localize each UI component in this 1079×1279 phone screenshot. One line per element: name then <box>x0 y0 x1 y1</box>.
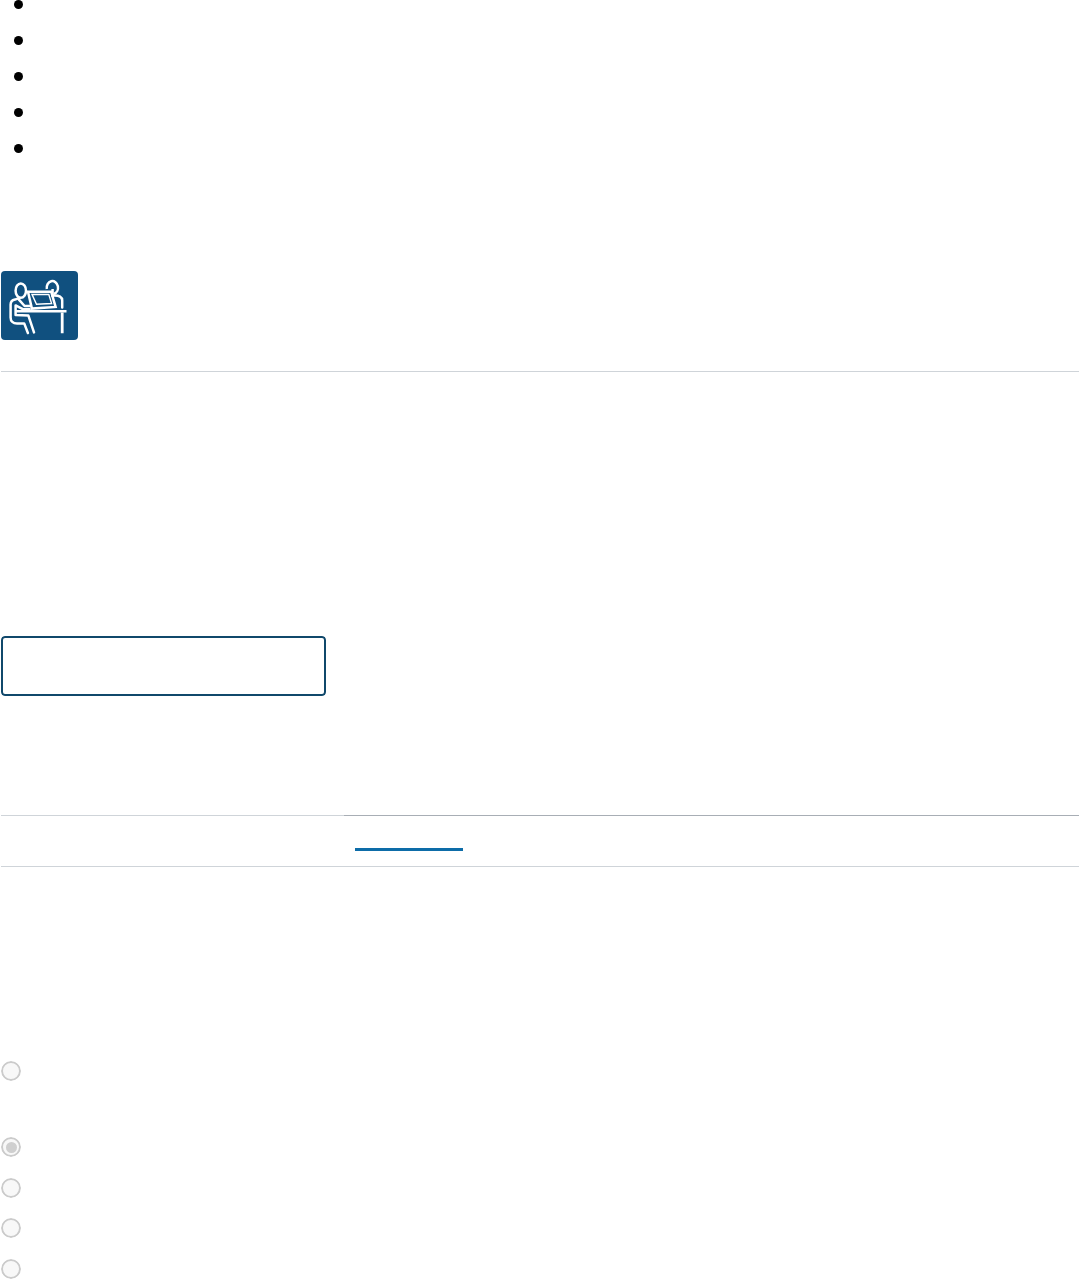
button[interactable]: Option 3 <box>1 1178 21 1198</box>
button[interactable]: Workstation assessment <box>1 271 78 340</box>
button[interactable]: Option 5 <box>1 1259 21 1279</box>
button[interactable]: Option 1 <box>1 1061 21 1081</box>
button[interactable]: Option 4 <box>1 1218 21 1238</box>
button[interactable]: Selected tab <box>344 816 474 866</box>
button[interactable]: Option 2 <box>1 1137 21 1157</box>
button[interactable]: Text field <box>1 636 326 696</box>
